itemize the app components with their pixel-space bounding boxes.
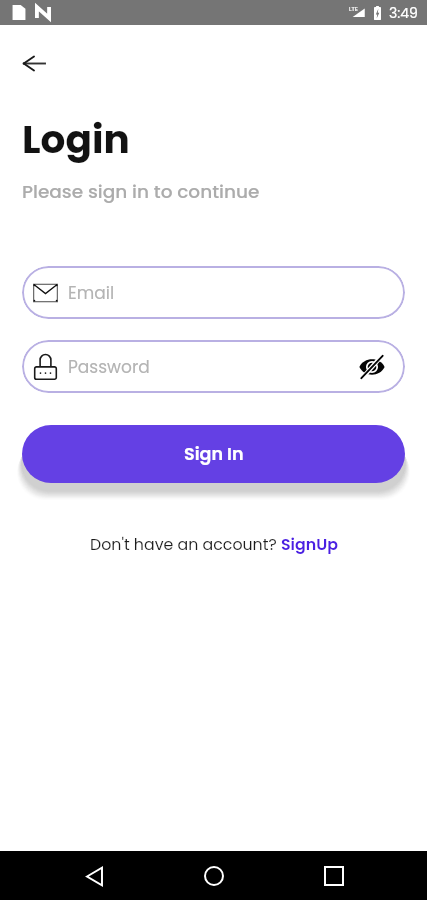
staticText: Sign In — [184, 442, 244, 467]
button[interactable]: Recents — [312, 854, 356, 898]
staticText: Email — [68, 281, 115, 305]
staticText: Login — [22, 112, 130, 167]
button[interactable]: Home — [192, 854, 236, 898]
staticText: Don't have an account? — [90, 533, 281, 555]
button[interactable]: Password — [22, 340, 405, 393]
staticText: LTE — [349, 5, 358, 13]
button[interactable]: Back — [11, 41, 56, 86]
button[interactable]: SignUp — [281, 533, 338, 555]
staticText: 3:49 — [389, 3, 418, 23]
button[interactable]: Sign In — [22, 425, 405, 483]
staticText: Please sign in to continue — [22, 179, 260, 205]
staticText: Password — [68, 355, 150, 379]
button[interactable]: Back — [72, 854, 116, 898]
button[interactable]: Show password — [356, 351, 388, 383]
button[interactable]: Email — [22, 266, 405, 319]
